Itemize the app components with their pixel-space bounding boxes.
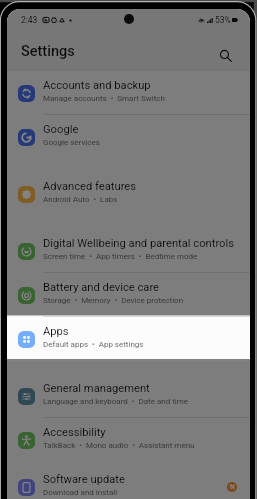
staticText: 53% bbox=[215, 15, 231, 25]
staticText: Accounts and backup bbox=[43, 79, 151, 92]
button[interactable]: Search bbox=[214, 44, 236, 66]
staticText: Manage accounts • Smart Switch bbox=[43, 94, 165, 103]
staticText: Google bbox=[43, 123, 79, 136]
staticText: Settings bbox=[21, 43, 75, 60]
button[interactable]: Google bbox=[7, 115, 250, 159]
staticText: Digital Wellbeing and parental controls bbox=[43, 237, 234, 250]
staticText: N bbox=[230, 483, 235, 491]
button[interactable]: General management bbox=[7, 374, 250, 418]
staticText: Storage • Memory • Device protection bbox=[43, 296, 184, 305]
staticText: Advanced features bbox=[43, 180, 137, 193]
staticText: Default apps • App settings bbox=[43, 340, 144, 349]
button[interactable]: Accessibility bbox=[7, 418, 250, 462]
staticText: Language and keyboard • Date and time bbox=[43, 397, 188, 406]
staticText: Apps bbox=[43, 325, 69, 338]
staticText: Battery and device care bbox=[43, 281, 160, 294]
staticText: Google services bbox=[43, 138, 100, 147]
button[interactable]: Accounts and backup bbox=[7, 71, 250, 115]
button[interactable]: Apps bbox=[7, 317, 250, 361]
staticText: Software update bbox=[43, 473, 125, 486]
staticText: Screen time • App timers • Bedtime mode bbox=[43, 252, 198, 261]
staticText: Accessibility bbox=[43, 426, 106, 439]
button[interactable]: Advanced features bbox=[7, 172, 250, 216]
staticText: TalkBack • Mono audio • Assistant menu bbox=[43, 441, 195, 450]
staticText: 2:43 bbox=[21, 15, 38, 25]
staticText: General management bbox=[43, 382, 150, 395]
button[interactable]: Software update bbox=[7, 475, 250, 499]
staticText: Android Auto • Labs bbox=[43, 195, 118, 204]
staticText: Download and install bbox=[43, 488, 118, 497]
button[interactable]: Battery and device care bbox=[7, 273, 250, 317]
button[interactable]: Digital Wellbeing and parental controls bbox=[7, 229, 250, 273]
